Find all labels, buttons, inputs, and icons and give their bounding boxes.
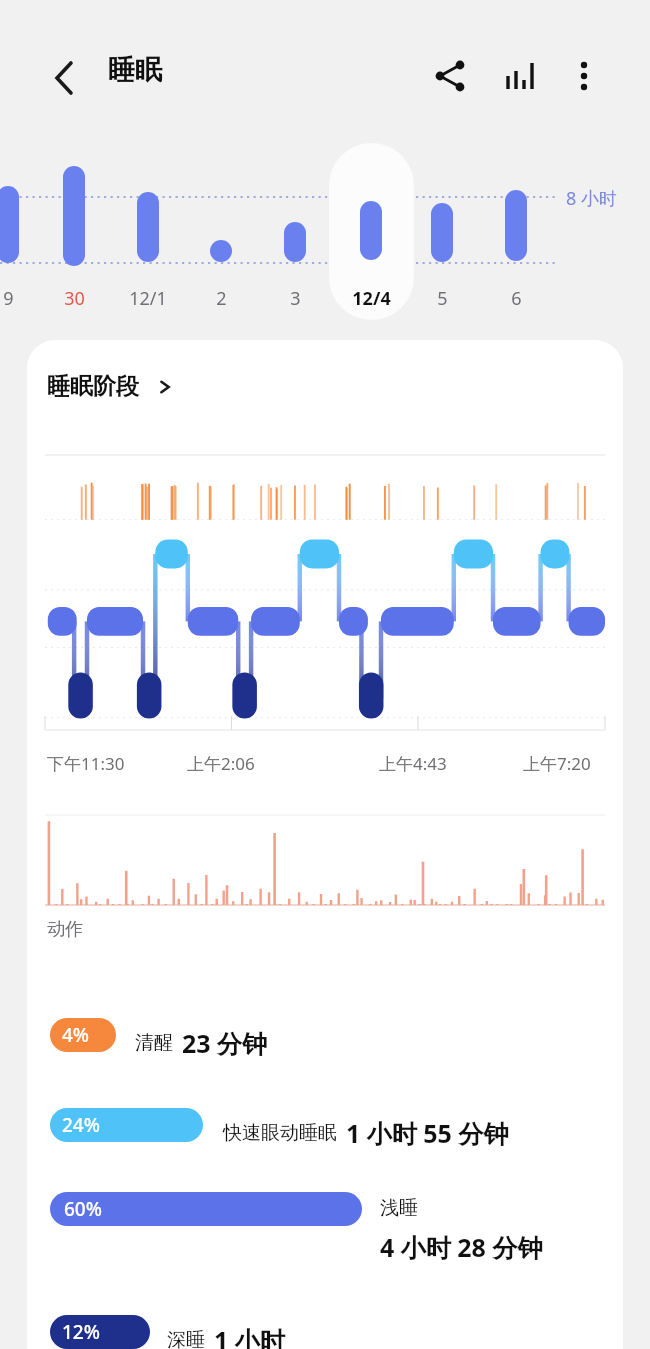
staticText: 12/4: [352, 286, 391, 311]
button[interactable]: Charts: [495, 50, 547, 102]
staticText: 9: [3, 286, 14, 311]
staticText: 30: [64, 286, 85, 311]
button[interactable]: 6: [476, 283, 556, 313]
staticText: 动作: [47, 918, 83, 941]
staticText: 上午2:06: [187, 752, 255, 775]
staticText: 5: [437, 286, 448, 311]
staticText: 8 小时: [566, 186, 617, 211]
staticText: 12/1: [129, 286, 167, 311]
button[interactable]: 睡眠阶段: [47, 372, 175, 401]
staticText: 23 分钟: [182, 1026, 268, 1060]
button[interactable]: 2: [181, 283, 261, 313]
staticText: 2: [216, 286, 227, 311]
button[interactable]: 24%: [50, 1108, 203, 1142]
staticText: 睡眠阶段: [47, 372, 139, 401]
button[interactable]: More options: [558, 50, 610, 102]
staticText: 4%: [62, 1022, 90, 1048]
staticText: 浅睡: [380, 1196, 418, 1220]
button[interactable]: 12/1: [108, 283, 188, 313]
button[interactable]: 12/4: [331, 283, 411, 313]
staticText: 深睡: [167, 1328, 205, 1349]
button[interactable]: [329, 143, 414, 320]
staticText: 3: [290, 286, 301, 311]
staticText: 60%: [64, 1196, 102, 1222]
staticText: 4 小时 28 分钟: [380, 1230, 543, 1264]
button[interactable]: Share: [425, 50, 477, 102]
staticText: 上午4:43: [379, 752, 447, 775]
button[interactable]: 12%: [50, 1315, 150, 1349]
button[interactable]: 4%: [50, 1018, 116, 1052]
button[interactable]: 30: [34, 283, 114, 313]
staticText: 24%: [62, 1112, 100, 1138]
staticText: 上午7:20: [523, 752, 591, 775]
staticText: 下午11:30: [47, 752, 125, 775]
staticText: 1 小时 55 分钟: [346, 1116, 509, 1150]
staticText: 12%: [62, 1319, 100, 1345]
staticText: 睡眠: [108, 53, 162, 87]
staticText: 清醒: [135, 1031, 173, 1055]
button[interactable]: 60%: [50, 1192, 362, 1226]
staticText: 1 小时: [214, 1323, 285, 1349]
button[interactable]: 3: [255, 283, 335, 313]
button[interactable]: Back: [38, 52, 90, 104]
staticText: 快速眼动睡眠: [223, 1121, 337, 1145]
button[interactable]: 9: [0, 283, 48, 313]
staticText: 6: [511, 286, 522, 311]
button[interactable]: 5: [402, 283, 482, 313]
